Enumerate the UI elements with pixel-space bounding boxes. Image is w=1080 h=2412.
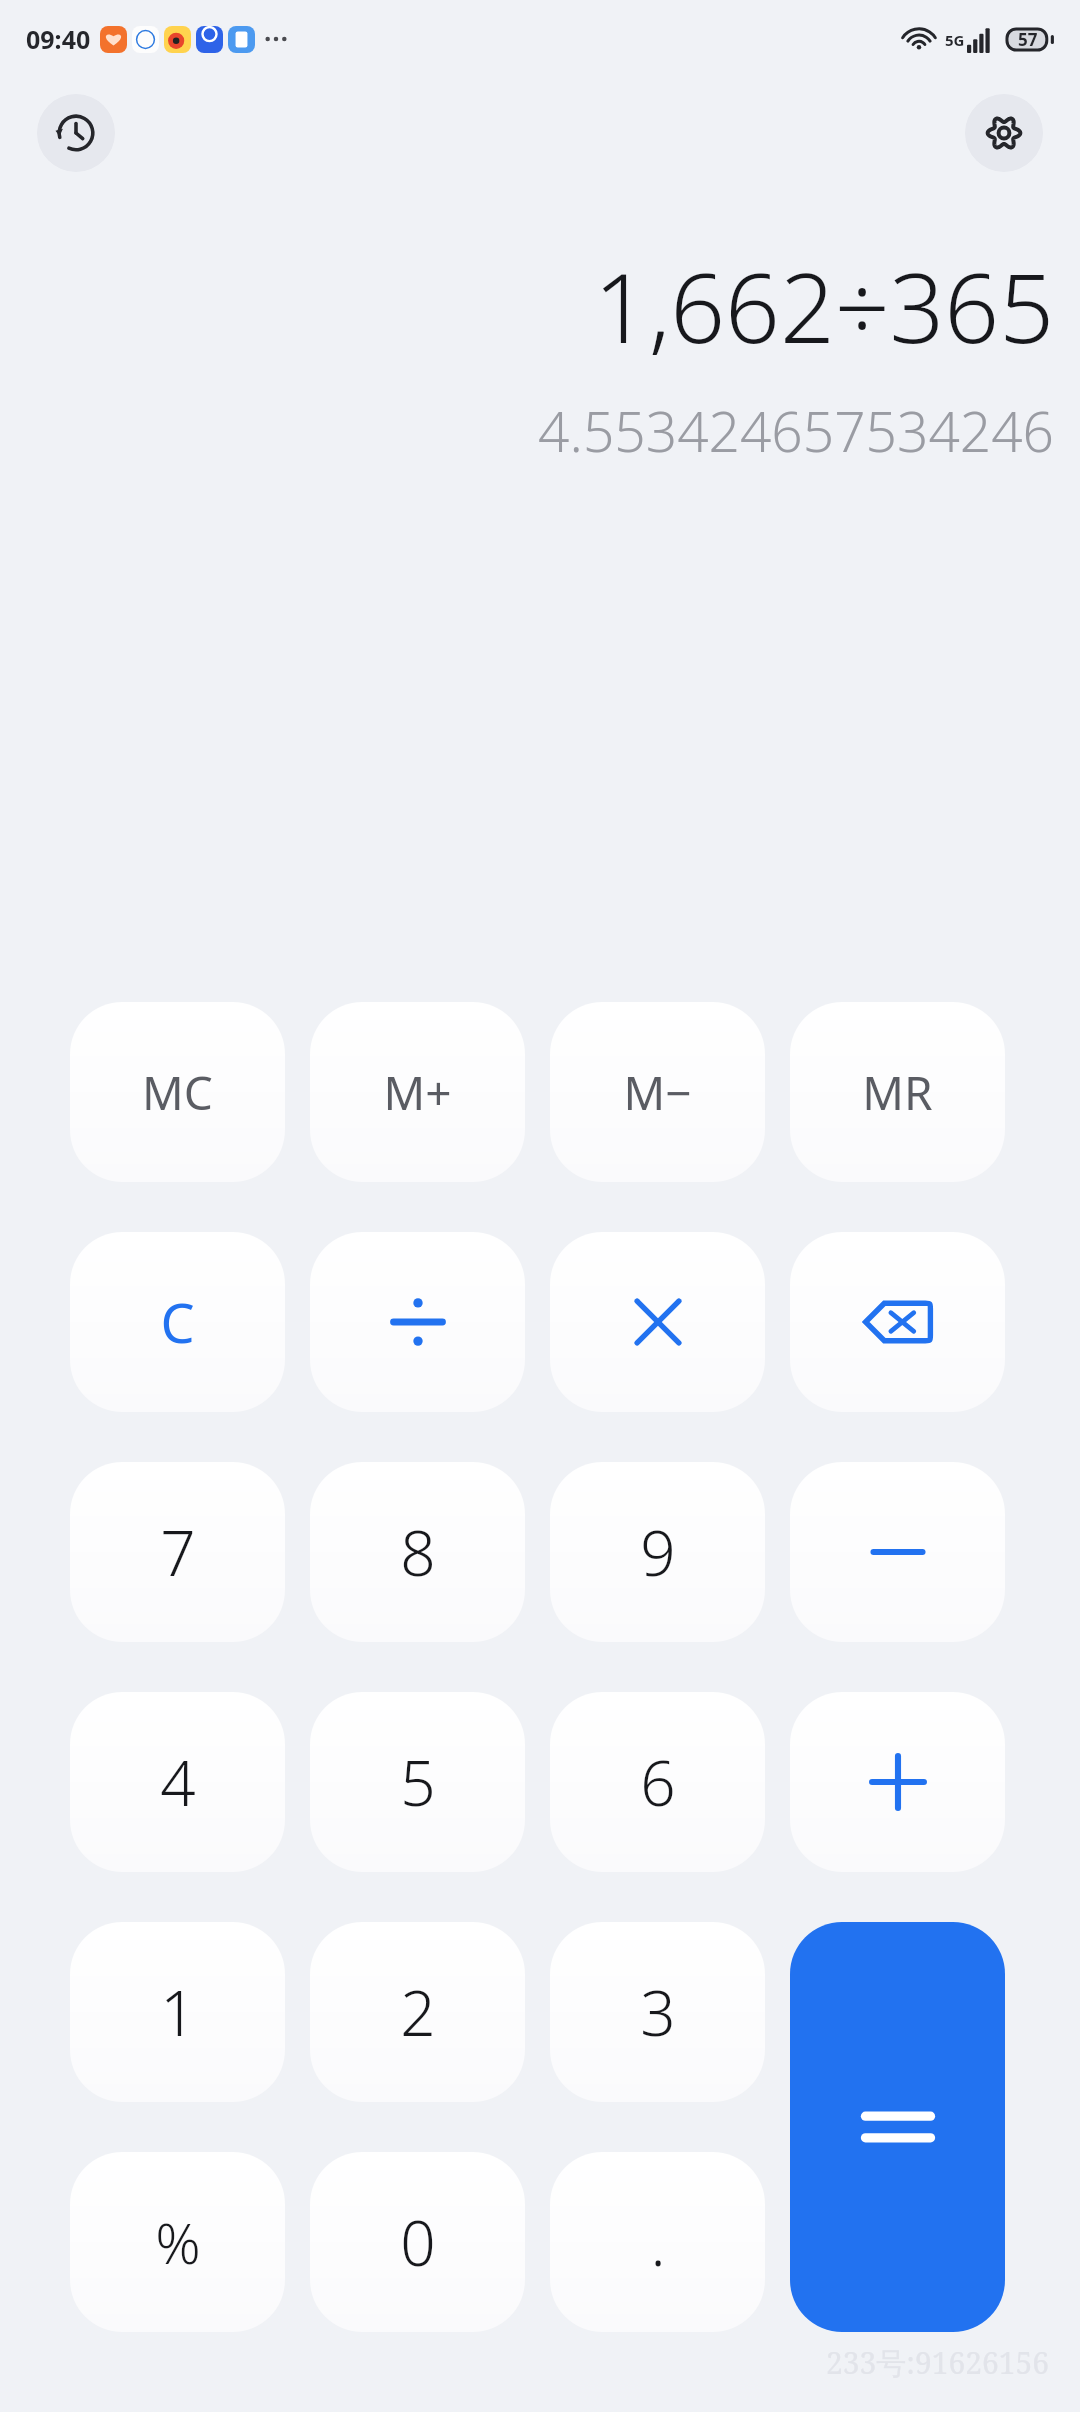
- button[interactable]: .: [550, 2152, 765, 2332]
- button[interactable]: 9: [550, 1462, 765, 1642]
- staticText: 3: [640, 1970, 676, 2054]
- button[interactable]: M−: [550, 1002, 765, 1182]
- button[interactable]: 2: [310, 1922, 525, 2102]
- staticText: 9: [640, 1510, 676, 1594]
- button[interactable]: 1: [70, 1922, 285, 2102]
- staticText: 1,662÷365: [593, 240, 1054, 371]
- button[interactable]: 6: [550, 1692, 765, 1872]
- staticText: 5G: [945, 30, 965, 50]
- staticText: M−: [623, 1061, 692, 1124]
- button[interactable]: 4: [70, 1692, 285, 1872]
- staticText: 233号:91626156: [826, 2342, 1050, 2383]
- button[interactable]: Equals: [790, 1922, 1005, 2332]
- staticText: 57: [1018, 28, 1038, 51]
- button[interactable]: Settings: [965, 94, 1043, 172]
- button[interactable]: 8: [310, 1462, 525, 1642]
- staticText: 8: [400, 1510, 436, 1594]
- staticText: 6: [640, 1740, 676, 1824]
- button[interactable]: MR: [790, 1002, 1005, 1182]
- staticText: 7: [160, 1510, 196, 1594]
- staticText: %: [155, 2204, 201, 2280]
- button[interactable]: 0: [310, 2152, 525, 2332]
- button[interactable]: Multiply: [550, 1232, 765, 1412]
- staticText: C: [160, 1285, 195, 1359]
- staticText: 1: [160, 1970, 196, 2054]
- staticText: 5: [400, 1740, 436, 1824]
- button[interactable]: Minus: [790, 1462, 1005, 1642]
- button[interactable]: Plus: [790, 1692, 1005, 1872]
- staticText: MR: [862, 1061, 933, 1124]
- button[interactable]: MC: [70, 1002, 285, 1182]
- staticText: M+: [383, 1061, 452, 1124]
- staticText: .: [650, 2200, 666, 2284]
- staticText: 0: [400, 2200, 436, 2284]
- button[interactable]: Divide: [310, 1232, 525, 1412]
- button[interactable]: Backspace: [790, 1232, 1005, 1412]
- button[interactable]: C: [70, 1232, 285, 1412]
- staticText: 4: [160, 1740, 196, 1824]
- button[interactable]: 3: [550, 1922, 765, 2102]
- button[interactable]: 7: [70, 1462, 285, 1642]
- button[interactable]: M+: [310, 1002, 525, 1182]
- staticText: MC: [142, 1061, 213, 1124]
- button[interactable]: 5: [310, 1692, 525, 1872]
- button[interactable]: %: [70, 2152, 285, 2332]
- staticText: 09:40: [26, 22, 91, 56]
- staticText: 2: [400, 1970, 436, 2054]
- staticText: 4.553424657534246: [538, 393, 1054, 468]
- button[interactable]: History: [37, 94, 115, 172]
